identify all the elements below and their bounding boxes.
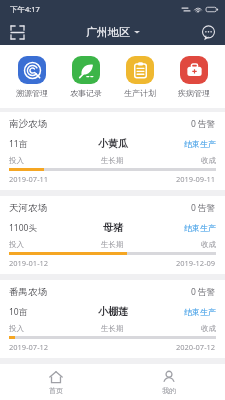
- staticText: 母猪: [103, 221, 123, 234]
- staticText: 小棚莲: [98, 305, 128, 318]
- staticText: 南沙农场: [9, 118, 47, 130]
- staticText: 0 告警: [191, 118, 216, 130]
- button[interactable]: 疾病管理: [167, 54, 221, 100]
- staticText: 2019-12-09: [176, 258, 216, 268]
- staticText: 投入: [9, 156, 24, 165]
- staticText: 0 告警: [191, 202, 216, 214]
- staticText: 农事记录: [70, 88, 102, 98]
- button[interactable]: 南沙农场: [0, 112, 225, 190]
- button[interactable]: 结束生产: [184, 139, 216, 149]
- button[interactable]: 溯源管理: [4, 54, 59, 100]
- staticText: 1100头: [9, 222, 37, 234]
- staticText: 2019-09-11: [176, 174, 216, 184]
- button[interactable]: 结束生产: [184, 307, 216, 317]
- staticText: 天河农场: [9, 202, 47, 214]
- staticText: 收成: [201, 240, 216, 249]
- button[interactable]: 天河农场: [0, 196, 225, 274]
- staticText: 2019-07-11: [9, 174, 49, 184]
- staticText: 溯源管理: [16, 88, 48, 98]
- button[interactable]: Scan QR code: [6, 21, 28, 43]
- staticText: 下午4:17: [10, 4, 40, 14]
- staticText: 我的: [162, 386, 176, 395]
- staticText: 生产计划: [124, 88, 156, 98]
- button[interactable]: Messages: [197, 21, 219, 43]
- staticText: 投入: [9, 324, 24, 333]
- button[interactable]: Home: [0, 364, 112, 400]
- staticText: 小黄瓜: [98, 137, 128, 150]
- staticText: 结束生产: [184, 307, 216, 317]
- staticText: 2019-01-12: [9, 258, 49, 268]
- staticText: 生长期: [101, 240, 124, 249]
- staticText: 生长期: [101, 156, 124, 165]
- staticText: 2020-07-12: [176, 342, 216, 352]
- staticText: 2019-07-12: [9, 342, 49, 352]
- staticText: 收成: [201, 156, 216, 165]
- staticText: 疾病管理: [178, 88, 210, 98]
- staticText: 11亩: [9, 138, 28, 150]
- staticText: 10亩: [9, 306, 28, 318]
- button[interactable]: 生产计划: [113, 54, 167, 100]
- button[interactable]: 广州地区: [86, 25, 140, 39]
- button[interactable]: 番禺农场: [0, 280, 225, 358]
- staticText: 0 告警: [191, 286, 216, 298]
- staticText: 首页: [49, 386, 63, 395]
- button[interactable]: 结束生产: [184, 223, 216, 233]
- staticText: 结束生产: [184, 223, 216, 233]
- staticText: 投入: [9, 240, 24, 249]
- staticText: 生长期: [101, 324, 124, 333]
- button[interactable]: 农事记录: [59, 54, 113, 100]
- staticText: 结束生产: [184, 139, 216, 149]
- button[interactable]: Profile: [112, 364, 225, 400]
- staticText: 收成: [201, 324, 216, 333]
- staticText: 番禺农场: [9, 286, 47, 298]
- staticText: 广州地区: [86, 25, 130, 39]
